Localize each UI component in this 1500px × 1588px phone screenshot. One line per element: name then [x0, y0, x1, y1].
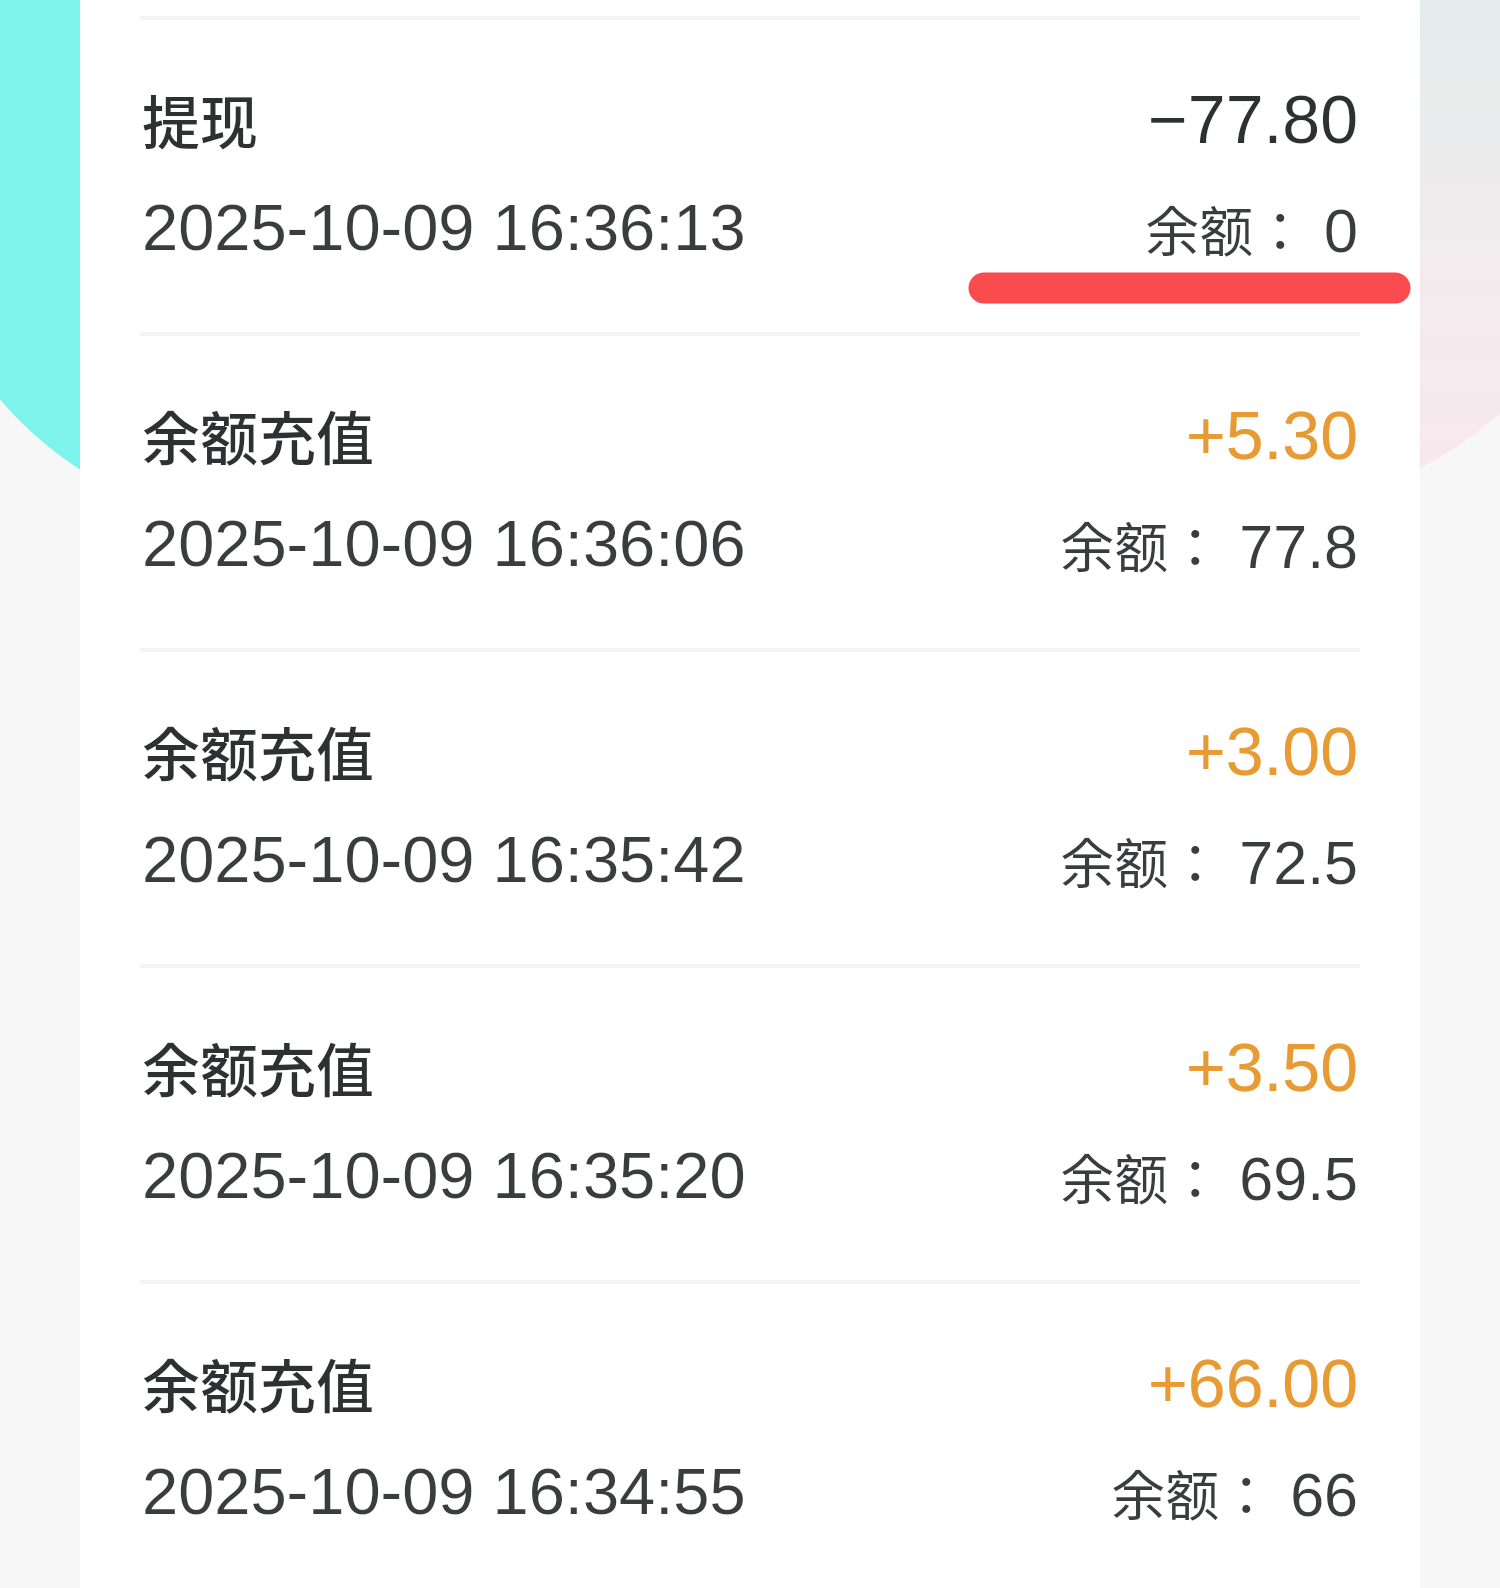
staticText: 2025-10-09 16:34:55	[142, 1455, 746, 1528]
staticText: 余额： 0	[80, 189, 1358, 267]
staticText: 余额： 72.5	[80, 821, 1358, 899]
button[interactable]: 余额充值	[80, 652, 1420, 964]
button[interactable]: 余额充值	[80, 1284, 1420, 1588]
staticText: +3.50	[80, 1029, 1358, 1105]
staticText: 2025-10-09 16:35:20	[142, 1139, 746, 1212]
staticText: +3.00	[80, 713, 1358, 789]
button[interactable]: 提现	[80, 20, 1420, 332]
staticText: 余额： 66	[80, 1453, 1358, 1531]
staticText: 2025-10-09 16:35:42	[142, 823, 746, 896]
staticText: 余额充值	[142, 1025, 375, 1109]
staticText: +5.30	[80, 397, 1358, 473]
staticText: +66.00	[80, 1345, 1358, 1421]
staticText: 余额充值	[142, 1341, 375, 1425]
staticText: 余额充值	[142, 709, 375, 793]
button[interactable]: 余额充值	[80, 336, 1420, 648]
staticText: 余额： 77.8	[80, 505, 1358, 583]
button[interactable]: 余额充值	[80, 968, 1420, 1280]
staticText: −77.80	[80, 81, 1358, 157]
staticText: 提现	[142, 77, 259, 161]
staticText: 2025-10-09 16:36:06	[142, 507, 746, 580]
staticText: 余额充值	[142, 393, 375, 477]
staticText: 余额： 69.5	[80, 1137, 1358, 1215]
staticText: 2025-10-09 16:36:13	[142, 191, 746, 264]
